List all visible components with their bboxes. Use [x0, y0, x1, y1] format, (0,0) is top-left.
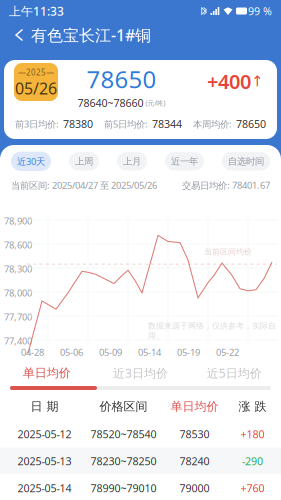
- staticText: 有色宝长江-1#铜: [31, 24, 151, 46]
- staticText: 2025-05-12: [17, 427, 71, 441]
- staticText: 78344: [152, 117, 182, 131]
- staticText: 78380: [63, 117, 93, 131]
- staticText: 近5日均价: [207, 365, 262, 381]
- staticText: 05/26: [15, 78, 57, 99]
- staticText: 78650: [86, 63, 156, 95]
- staticText: 78230~78250: [90, 454, 156, 468]
- staticText: 78,000: [4, 287, 32, 299]
- staticText: 价格区间: [99, 399, 147, 414]
- staticText: 自选时间: [228, 156, 264, 167]
- staticText: 78650: [236, 117, 266, 131]
- staticText: -290: [242, 454, 263, 468]
- staticText: 05-22: [216, 346, 239, 358]
- button[interactable]: 上月: [117, 152, 147, 171]
- button[interactable]: 自选时间: [222, 152, 270, 171]
- staticText: 涨 跌: [238, 399, 266, 414]
- staticText: 单日均价: [23, 366, 71, 380]
- staticText: 上午11:33: [9, 3, 64, 19]
- staticText: 77,700: [4, 311, 32, 323]
- staticText: +400: [207, 68, 251, 95]
- staticText: 日 期: [30, 399, 58, 414]
- staticText: (元/吨): [145, 98, 165, 107]
- staticText: —2025—: [18, 67, 54, 78]
- staticText: 2025-05-13: [17, 454, 71, 468]
- button[interactable]: 单日均价: [0, 366, 94, 380]
- staticText: 当前区间: 2025/04/27 至 2025/05/26: [11, 179, 157, 191]
- button[interactable]: 近30天: [11, 152, 51, 171]
- staticText: +760: [240, 481, 264, 495]
- staticText: 78,600: [4, 239, 32, 251]
- button[interactable]: 近3日均价: [94, 365, 187, 381]
- button[interactable]: Back: [13, 27, 26, 43]
- staticText: 78240: [179, 454, 209, 468]
- staticText: 77,400: [4, 335, 32, 347]
- staticText: 04-28: [21, 346, 44, 358]
- staticText: 当前区间均价: [204, 247, 252, 257]
- staticText: 78,900: [4, 215, 32, 227]
- button[interactable]: 上周: [69, 152, 99, 171]
- button[interactable]: 近5日均价: [187, 365, 281, 381]
- staticText: 05-14: [138, 346, 161, 358]
- staticText: 数据来源于网络，仅供参考，实际自用。: [148, 321, 276, 341]
- staticText: 上周: [75, 156, 93, 167]
- staticText: 交易日均价: 78401.67: [182, 179, 270, 191]
- staticText: 前3日均价:: [15, 118, 61, 130]
- staticText: 78990~79010: [90, 481, 156, 495]
- staticText: +180: [240, 427, 264, 441]
- staticText: 78,300: [4, 263, 32, 275]
- staticText: 近一年: [171, 156, 198, 167]
- staticText: 79000: [179, 481, 209, 495]
- staticText: 近30天: [17, 155, 45, 167]
- staticText: 近3日均价: [113, 365, 168, 381]
- staticText: 05-06: [60, 346, 83, 358]
- staticText: 05-09: [99, 346, 122, 358]
- staticText: 上月: [123, 156, 141, 167]
- staticText: 2025-05-14: [17, 481, 71, 495]
- button[interactable]: 近一年: [165, 152, 204, 171]
- staticText: 78520~78540: [90, 427, 156, 441]
- staticText: 05-19: [177, 346, 200, 358]
- staticText: 78640~78660: [77, 96, 143, 110]
- staticText: ↑: [251, 73, 263, 90]
- staticText: 本周均价:: [193, 118, 234, 130]
- staticText: 前5日均价:: [104, 118, 150, 130]
- staticText: 单日均价: [170, 399, 218, 414]
- staticText: 99 %: [248, 4, 272, 18]
- staticText: 78530: [179, 427, 209, 441]
